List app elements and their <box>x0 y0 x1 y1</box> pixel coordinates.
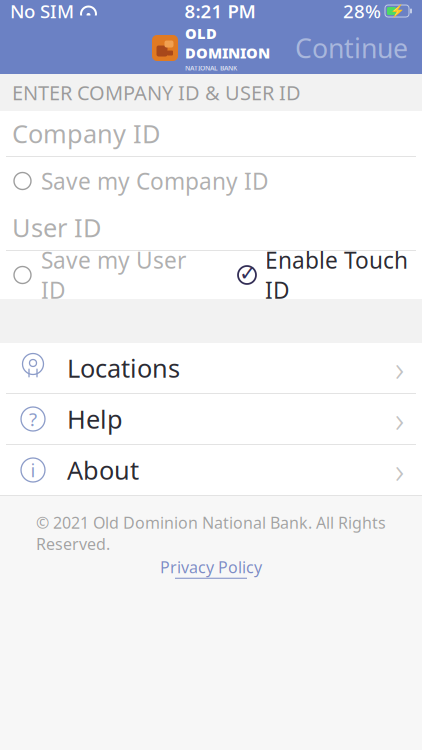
staticText: OLD <box>185 24 217 43</box>
staticText: NATIONAL BANK <box>185 64 237 72</box>
staticText: 28% <box>343 0 381 23</box>
staticText: No SIM <box>10 0 74 23</box>
staticText: ✓ <box>239 261 257 285</box>
staticText: › <box>395 447 404 493</box>
staticText: Save my Company ID <box>41 166 269 196</box>
button[interactable]: ✓ <box>237 235 408 315</box>
staticText: 8:21 PM <box>184 0 255 23</box>
staticText: © 2021 Old Dominion National Bank. All R… <box>36 512 386 554</box>
staticText: DOMINION <box>185 43 270 63</box>
staticText: About <box>67 453 139 487</box>
staticText: › <box>395 345 404 391</box>
staticText: Save my User ID <box>41 245 186 305</box>
button[interactable]: ? <box>0 394 422 444</box>
staticText: ENTER COMPANY ID & USER ID <box>12 79 301 106</box>
staticText: Locations <box>67 351 180 385</box>
staticText: i <box>30 458 35 482</box>
button[interactable]: Privacy Policy <box>154 556 268 582</box>
staticText: Privacy Policy <box>160 556 262 578</box>
button[interactable]: Save my User ID <box>14 235 186 315</box>
button[interactable]: Locations <box>0 343 422 393</box>
staticText: ⚡ <box>389 4 404 18</box>
staticText: ? <box>29 407 37 431</box>
button[interactable]: Continue <box>281 20 422 76</box>
staticText: Enable Touch ID <box>265 245 408 305</box>
button[interactable]: Save my Company ID <box>0 157 422 205</box>
staticText: › <box>395 396 404 442</box>
button[interactable]: i <box>0 445 422 495</box>
staticText: Continue <box>295 30 408 66</box>
staticText: User ID <box>12 211 101 244</box>
staticText: Help <box>67 402 123 436</box>
staticText: Company ID <box>12 117 160 150</box>
